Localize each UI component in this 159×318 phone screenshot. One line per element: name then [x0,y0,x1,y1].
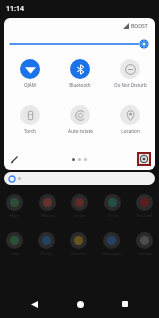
button[interactable]: Photos [39,194,56,211]
staticText: Camera [137,251,152,256]
staticText: YouTube [136,213,153,218]
button[interactable]: Phone [38,232,55,249]
button[interactable]: Torch [4,102,55,148]
button[interactable]: Back [22,292,46,316]
button[interactable]: Messages [103,232,120,249]
staticText: Messages [102,251,121,256]
staticText: 11:14 [6,4,24,14]
staticText: Gmail [74,213,85,218]
staticText: Torch [24,128,36,134]
button[interactable]: Recents [113,292,137,316]
button[interactable]: Home [68,292,92,316]
staticText: Auto-rotate [68,128,93,134]
staticText: BOOST [131,23,148,30]
staticText: Photos [41,213,55,218]
button[interactable]: OJAM [4,56,55,102]
button[interactable]: Brightness [4,34,155,54]
button[interactable]: YouTube [136,194,153,211]
button[interactable]: Play [6,232,23,249]
staticText: Do Not Disturb [114,82,147,88]
staticText: Maps [9,213,20,218]
button[interactable]: Gmail [71,194,88,211]
button[interactable]: Search [4,172,155,185]
staticText: Chrome [71,251,86,256]
button[interactable]: Camera [136,232,153,249]
staticText: Play [11,251,19,256]
staticText: Bluetooth [69,82,91,88]
staticText: Drive [108,213,118,218]
staticText: Phone [40,251,53,256]
staticText: OJAM [24,82,36,88]
button[interactable]: Settings [139,154,149,164]
button[interactable]: Maps [6,194,23,211]
button[interactable]: Drive [104,194,121,211]
button[interactable]: Auto-rotate [55,102,105,148]
button[interactable]: Chrome [70,232,87,249]
button[interactable]: Do Not Disturb [105,56,155,102]
staticText: Location [121,128,140,134]
button[interactable]: Edit [8,152,22,166]
button[interactable]: Location [105,102,155,148]
button[interactable]: Bluetooth [55,56,105,102]
